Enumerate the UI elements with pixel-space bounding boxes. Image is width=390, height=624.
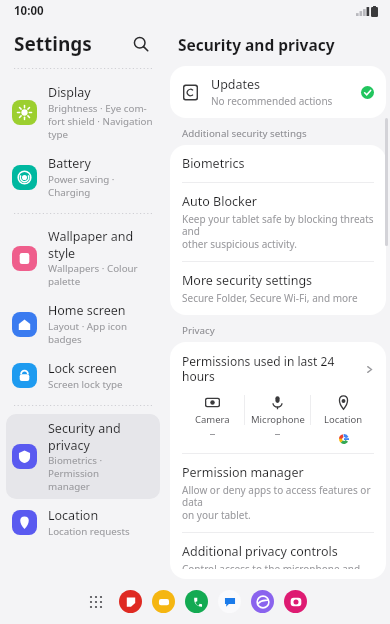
staticText: Security and privacy	[178, 34, 335, 55]
staticText: Home screen	[48, 302, 126, 319]
button[interactable]: Search	[126, 29, 156, 59]
staticText: More security settings	[182, 272, 313, 289]
staticText: Power saving · Charging	[48, 173, 115, 199]
staticText: Layout · App icon badges	[48, 320, 127, 346]
button[interactable]: Permission manager	[170, 454, 386, 532]
staticText: Camera	[195, 413, 230, 426]
staticText: No recommended actions	[211, 94, 333, 108]
staticText: Wallpapers · Colour palette	[48, 262, 138, 288]
staticText: Permissions used in last 24 hours	[182, 353, 365, 385]
button[interactable]: App	[251, 590, 274, 613]
button[interactable]: Biometrics	[170, 145, 386, 182]
staticText: Permission manager	[182, 464, 304, 481]
button[interactable]: Auto Blocker	[170, 183, 386, 261]
button[interactable]: Display	[6, 78, 160, 147]
button[interactable]: Wallpaper and style	[6, 222, 160, 294]
staticText: Lock screen	[48, 360, 117, 377]
button[interactable]: Camera	[180, 395, 244, 435]
staticText: Updates	[211, 76, 261, 93]
staticText: Security and privacy	[48, 420, 121, 453]
staticText: Location	[324, 413, 363, 426]
staticText: Control access to the microphone and cli…	[182, 562, 361, 569]
button[interactable]: App	[152, 590, 175, 613]
button[interactable]: App	[218, 590, 241, 613]
staticText: Display	[48, 84, 91, 101]
staticText: Settings	[14, 31, 92, 57]
staticText: Biometrics	[182, 155, 245, 172]
button[interactable]: Lock screen	[6, 354, 160, 397]
staticText: Auto Blocker	[182, 193, 257, 210]
staticText: Biometrics · Permission manager	[48, 454, 154, 493]
staticText: Additional privacy controls	[182, 543, 338, 560]
staticText: Brightness · Eye com- fort shield · Navi…	[48, 102, 153, 141]
button[interactable]: Permissions used in last 24 hours	[170, 342, 386, 393]
staticText: Keep your tablet safe by blocking threat…	[182, 212, 374, 251]
button[interactable]: App	[185, 590, 208, 613]
staticText: Location	[48, 507, 99, 524]
button[interactable]: More security settings	[170, 262, 386, 315]
button[interactable]: Microphone	[245, 395, 310, 435]
staticText: Secure Folder, Secure Wi-Fi, and more	[182, 291, 358, 305]
staticText: Location requests	[48, 525, 130, 538]
button[interactable]: App	[119, 590, 142, 613]
button[interactable]: App	[284, 590, 307, 613]
button[interactable]: Location	[311, 395, 376, 444]
staticText: Wallpaper and style	[48, 228, 134, 261]
button[interactable]: Security and privacy	[6, 414, 160, 499]
staticText: Additional security settings	[182, 127, 307, 140]
staticText: Battery	[48, 155, 91, 172]
button[interactable]: Home screen	[6, 296, 160, 352]
staticText: 10:00	[14, 3, 44, 19]
staticText: Privacy	[182, 324, 215, 337]
button[interactable]: Updates	[170, 66, 386, 118]
button[interactable]: All apps	[84, 590, 108, 614]
button[interactable]: Additional privacy controls	[170, 533, 386, 579]
staticText: Allow or deny apps to access features or…	[182, 483, 374, 522]
button[interactable]: Location	[6, 501, 160, 544]
staticText: Screen lock type	[48, 378, 123, 391]
staticText: Microphone	[251, 413, 305, 426]
button[interactable]: Battery	[6, 149, 160, 205]
